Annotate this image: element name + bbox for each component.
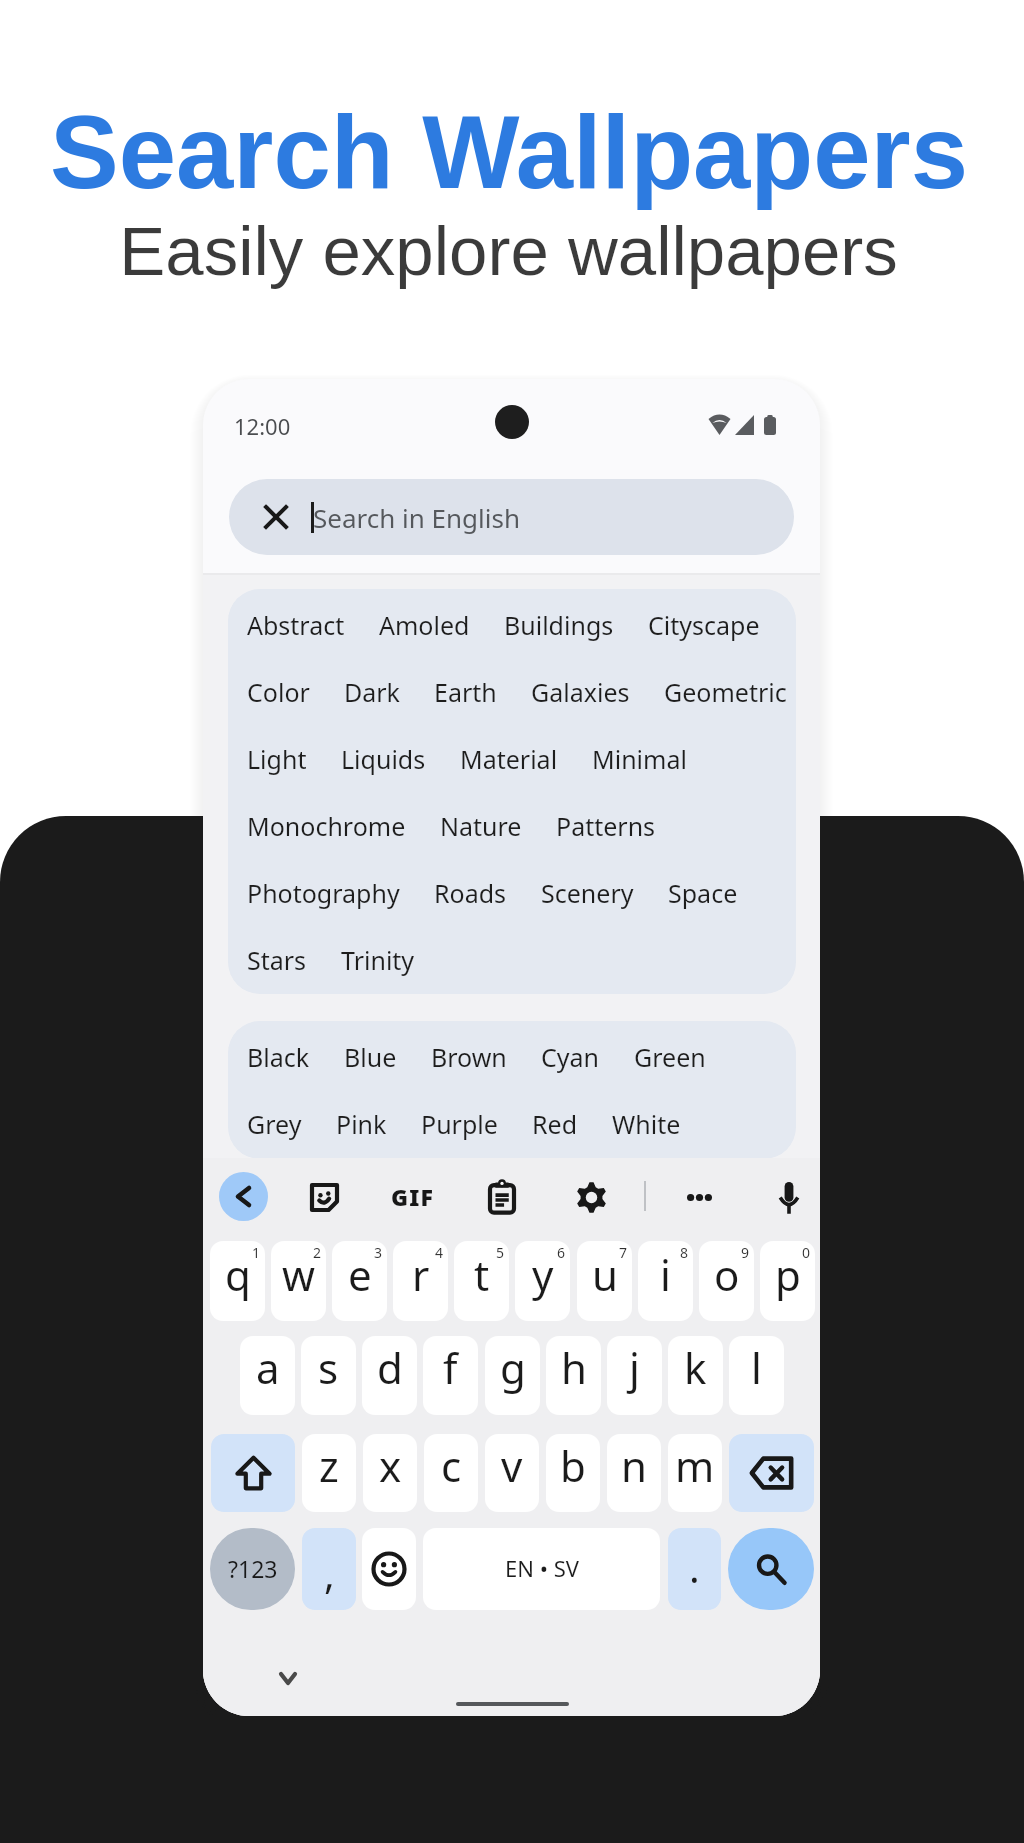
button[interactable]: Photography — [247, 876, 400, 910]
button[interactable]: Sticker — [304, 1177, 344, 1217]
staticText: Blue — [344, 1040, 397, 1074]
button[interactable]: 8 — [638, 1241, 693, 1321]
button[interactable]: Trinity — [341, 943, 415, 977]
button[interactable]: Minimal — [592, 742, 687, 776]
button[interactable]: Galaxies — [531, 675, 630, 709]
button[interactable]: Earth — [434, 675, 497, 709]
staticText: d — [377, 1339, 403, 1396]
button[interactable]: k — [668, 1336, 723, 1415]
button[interactable]: Material — [460, 742, 558, 776]
button[interactable]: Emoji — [362, 1528, 416, 1610]
button[interactable]: Settings — [571, 1177, 611, 1217]
button[interactable]: b — [546, 1434, 600, 1512]
staticText: Scenery — [541, 876, 634, 910]
staticText: f — [443, 1339, 458, 1396]
button[interactable]: Red — [532, 1107, 578, 1141]
button[interactable]: n — [607, 1434, 661, 1512]
button[interactable]: x — [363, 1434, 417, 1512]
button[interactable]: Hide keyboard — [280, 1673, 296, 1684]
button[interactable]: Liquids — [341, 742, 426, 776]
staticText: Nature — [440, 809, 522, 843]
button[interactable]: Cyan — [541, 1040, 600, 1074]
staticText: Pink — [336, 1107, 387, 1141]
staticText: n — [621, 1437, 647, 1494]
staticText: 0 — [802, 1243, 811, 1262]
staticText: Geometric — [664, 675, 787, 709]
button[interactable]: l — [729, 1336, 784, 1415]
staticText: Galaxies — [531, 675, 630, 709]
button[interactable]: Amoled — [379, 608, 470, 642]
button[interactable]: GIF — [385, 1178, 441, 1214]
button[interactable]: 6 — [515, 1241, 570, 1321]
staticText: Brown — [431, 1040, 507, 1074]
button[interactable]: 1 — [210, 1241, 265, 1321]
button[interactable]: Back — [219, 1172, 268, 1221]
button[interactable]: Shift — [211, 1434, 295, 1512]
button[interactable]: . — [668, 1528, 721, 1610]
button[interactable]: Grey — [247, 1107, 302, 1141]
button[interactable]: j — [607, 1336, 662, 1415]
staticText: y — [532, 1246, 554, 1303]
other: Clear search — [265, 506, 287, 528]
button[interactable]: f — [423, 1336, 478, 1415]
button[interactable]: a — [240, 1336, 295, 1415]
button[interactable]: 2 — [271, 1241, 326, 1321]
button[interactable]: Cityscape — [648, 608, 760, 642]
button[interactable]: Abstract — [247, 608, 345, 642]
staticText: u — [592, 1246, 618, 1303]
button[interactable]: 3 — [332, 1241, 387, 1321]
staticText: Dark — [344, 675, 400, 709]
button[interactable]: , — [302, 1528, 356, 1610]
button[interactable]: Purple — [421, 1107, 498, 1141]
button[interactable]: More options — [679, 1177, 719, 1217]
button[interactable]: Patterns — [556, 809, 656, 843]
button[interactable]: h — [546, 1336, 601, 1415]
button[interactable]: m — [668, 1434, 722, 1512]
button[interactable]: 9 — [699, 1241, 754, 1321]
button[interactable]: White — [612, 1107, 681, 1141]
button[interactable]: Monochrome — [247, 809, 406, 843]
staticText: r — [412, 1246, 430, 1303]
button[interactable]: 4 — [393, 1241, 448, 1321]
button[interactable]: 0 — [760, 1241, 815, 1321]
button[interactable]: Clear search — [229, 479, 794, 555]
button[interactable]: g — [485, 1336, 540, 1415]
button[interactable]: s — [301, 1336, 356, 1415]
staticText: m — [675, 1437, 715, 1494]
button[interactable]: ?123 — [210, 1528, 295, 1610]
button[interactable]: z — [302, 1434, 356, 1512]
button[interactable]: 5 — [454, 1241, 509, 1321]
button[interactable]: Buildings — [504, 608, 614, 642]
staticText: Cityscape — [648, 608, 760, 642]
button[interactable]: Pink — [336, 1107, 387, 1141]
button[interactable]: Voice input — [769, 1177, 809, 1217]
button[interactable]: Clipboard — [482, 1177, 522, 1217]
staticText: i — [660, 1246, 671, 1303]
staticText: Easily explore wallpapers — [119, 213, 898, 290]
button[interactable]: Nature — [440, 809, 522, 843]
button[interactable]: c — [424, 1434, 478, 1512]
button[interactable]: v — [485, 1434, 539, 1512]
button[interactable]: Search — [728, 1528, 814, 1610]
button[interactable]: Stars — [247, 943, 307, 977]
button[interactable]: Light — [247, 742, 307, 776]
button[interactable]: Space — [668, 876, 738, 910]
button[interactable]: Scenery — [541, 876, 634, 910]
staticText: Material — [460, 742, 558, 776]
button[interactable]: d — [362, 1336, 417, 1415]
button[interactable]: Color — [247, 675, 310, 709]
button[interactable]: 7 — [577, 1241, 632, 1321]
button[interactable]: Dark — [344, 675, 400, 709]
button[interactable]: Backspace — [729, 1434, 814, 1512]
button[interactable]: Blue — [344, 1040, 397, 1074]
button[interactable]: Black — [247, 1040, 310, 1074]
staticText: , — [324, 1546, 335, 1600]
button[interactable]: Green — [634, 1040, 706, 1074]
staticText: q — [225, 1246, 251, 1303]
button[interactable]: Roads — [434, 876, 507, 910]
button[interactable]: EN • SV — [423, 1528, 660, 1610]
button[interactable]: Geometric — [664, 675, 787, 709]
staticText: Light — [247, 742, 307, 776]
staticText: Abstract — [247, 608, 345, 642]
button[interactable]: Brown — [431, 1040, 507, 1074]
